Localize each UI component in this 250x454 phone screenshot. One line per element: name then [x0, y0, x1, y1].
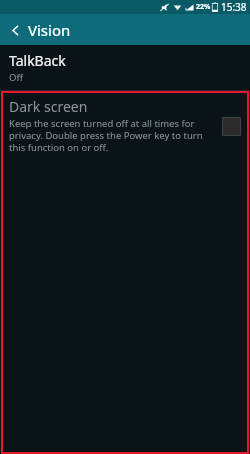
staticText: Off — [9, 71, 23, 84]
staticText: 22% — [196, 2, 211, 12]
staticText: Vision — [28, 20, 71, 40]
staticText: TalkBack — [9, 51, 66, 70]
staticText: Dark screen — [9, 97, 88, 116]
staticText: Keep the screen turned off at all times … — [9, 117, 212, 154]
button[interactable]: Back — [4, 19, 26, 41]
button[interactable]: TalkBack — [0, 45, 250, 90]
button[interactable]: Dark screen — [0, 91, 250, 160]
button[interactable]: Toggle Dark screen — [218, 113, 244, 139]
staticText: 15:38 — [221, 0, 247, 14]
